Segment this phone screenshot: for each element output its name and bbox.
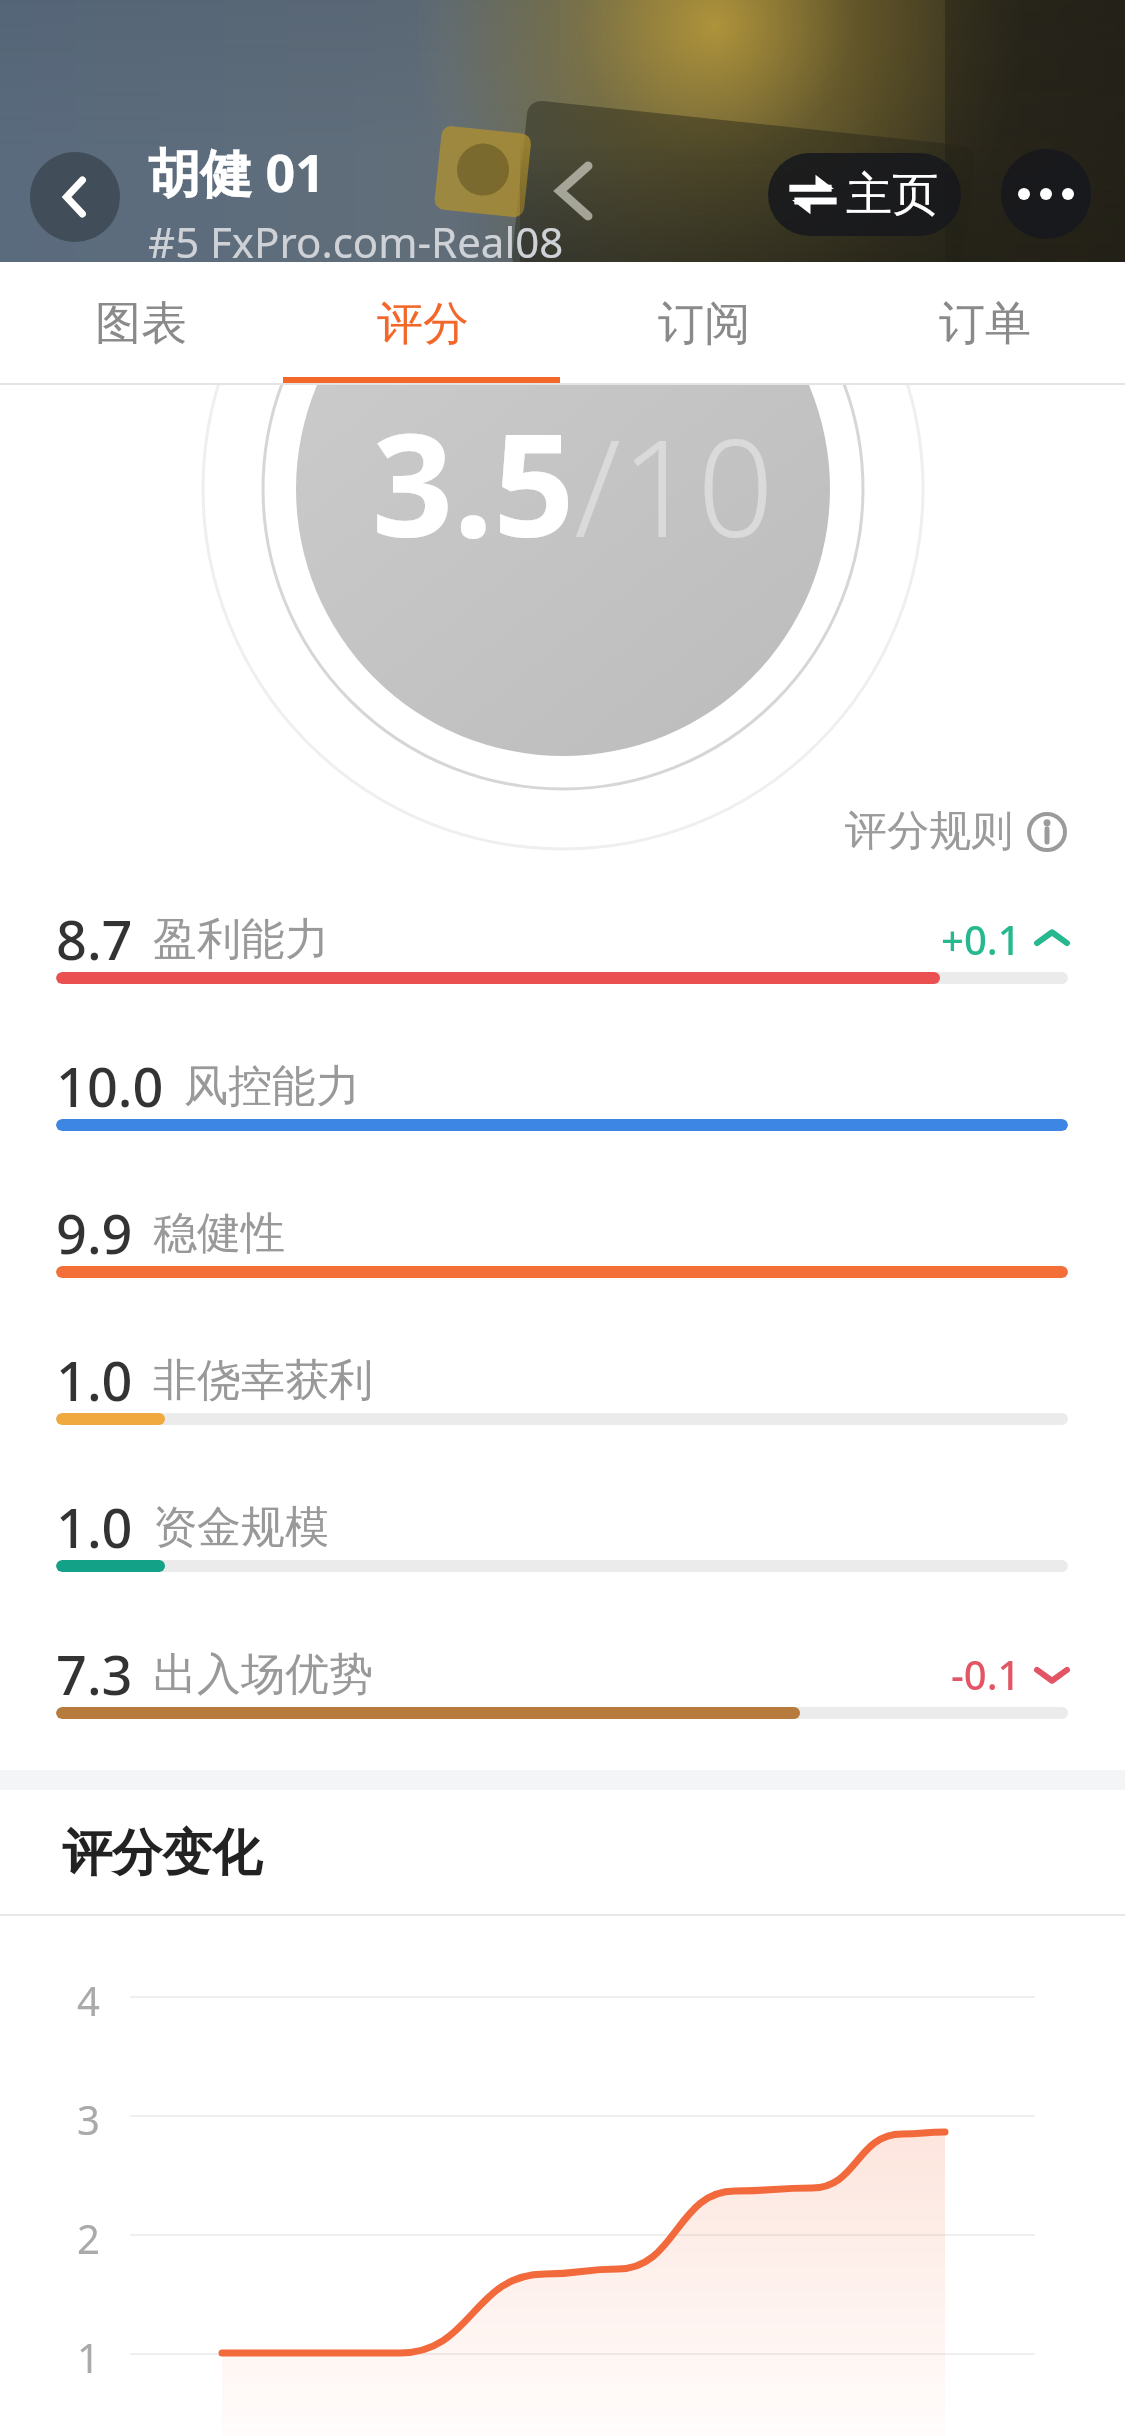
staticText: -0.1 bbox=[951, 1647, 1021, 1701]
staticText: 评分变化 bbox=[62, 1822, 262, 1885]
staticText: 7.3 bbox=[56, 1637, 133, 1711]
staticText: 稳健性 bbox=[153, 1206, 285, 1261]
staticText: 4 bbox=[77, 1973, 100, 2027]
staticText: 资金规模 bbox=[153, 1500, 329, 1555]
button[interactable]: 订单 bbox=[844, 262, 1125, 385]
staticText: 8.7 bbox=[56, 902, 133, 976]
staticText: 非侥幸获利 bbox=[153, 1353, 373, 1408]
staticText: 3.5/10 bbox=[372, 385, 774, 578]
staticText: 1.0 bbox=[56, 1490, 133, 1564]
staticText: #5 FxPro.com-Real08 bbox=[148, 213, 564, 262]
staticText: +0.1 bbox=[941, 912, 1021, 966]
staticText: 订阅 bbox=[658, 295, 750, 353]
button[interactable]: 评分 bbox=[282, 262, 563, 385]
staticText: 评分规则 bbox=[845, 805, 1013, 858]
button[interactable] bbox=[30, 152, 120, 242]
staticText: 3 bbox=[77, 2092, 100, 2146]
button[interactable]: 评分规则 bbox=[845, 805, 1067, 858]
staticText: 1 bbox=[77, 2330, 100, 2384]
button[interactable]: 图表 bbox=[0, 262, 282, 385]
staticText: 出入场优势 bbox=[153, 1647, 373, 1702]
staticText: 主页 bbox=[846, 166, 938, 224]
button[interactable]: 主页 bbox=[768, 153, 961, 236]
staticText: 风控能力 bbox=[184, 1059, 360, 1114]
staticText: 图表 bbox=[95, 295, 187, 353]
staticText: 10.0 bbox=[56, 1049, 164, 1123]
staticText: 1.0 bbox=[56, 1343, 133, 1417]
button[interactable]: 订阅 bbox=[563, 262, 844, 385]
staticText: 胡健 01 bbox=[148, 136, 326, 207]
staticText: 9.9 bbox=[56, 1196, 133, 1270]
button[interactable] bbox=[1001, 149, 1091, 239]
staticText: 评分 bbox=[377, 295, 469, 353]
staticText: 盈利能力 bbox=[153, 912, 329, 967]
staticText: 订单 bbox=[939, 295, 1031, 353]
staticText: 2 bbox=[77, 2211, 100, 2265]
